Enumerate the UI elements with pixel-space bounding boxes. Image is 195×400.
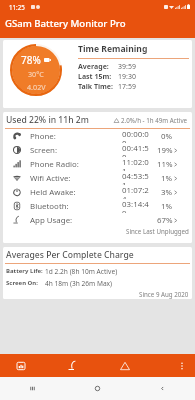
- staticText: 30°C: [28, 69, 44, 79]
- button[interactable]: Home: [65, 377, 130, 400]
- staticText: 3%: [161, 187, 173, 198]
- staticText: 17:59: [118, 82, 136, 92]
- button[interactable]: Back: [130, 377, 195, 400]
- staticText: Since Last Unplugged: [126, 227, 189, 235]
- button[interactable]: Recents: [0, 377, 65, 400]
- staticText: Screen:: [30, 145, 58, 156]
- staticText: Held Awake:: [30, 187, 76, 198]
- staticText: 19%: [157, 145, 173, 156]
- staticText: 0%: [161, 131, 173, 142]
- staticText: Screen On:: [6, 279, 38, 287]
- button[interactable]: Alerts: [107, 354, 143, 377]
- staticText: Battery Life:: [6, 267, 43, 275]
- staticText: 78%: [21, 53, 41, 67]
- button[interactable]: Bluetooth:: [3, 199, 192, 213]
- staticText: Bluetooth:: [30, 201, 69, 212]
- staticText: 39:59: [118, 62, 136, 72]
- button[interactable]: History: [3, 354, 39, 377]
- staticText: Last 15m:: [78, 72, 112, 82]
- button[interactable]: Wifi Active:: [3, 171, 192, 185]
- staticText: 11%: [157, 159, 173, 170]
- staticText: 00:41:50: [122, 143, 149, 157]
- button[interactable]: Screen:: [3, 143, 192, 157]
- button[interactable]: GSam Battery Monitor Pro: [0, 13, 195, 38]
- staticText: 03:14:49: [122, 199, 149, 213]
- staticText: 1d 2.2h (8h 10m Active): [45, 267, 118, 276]
- button[interactable]: Phone Radio:: [3, 157, 192, 171]
- staticText: Averages Per Complete Charge: [6, 249, 134, 261]
- staticText: 04:53:51: [122, 171, 149, 185]
- button[interactable]: Usage chart: [55, 354, 91, 377]
- staticText: 01:07:24: [122, 185, 149, 199]
- staticText: 2.0%/h - 1h 49m Active: [121, 116, 188, 124]
- staticText: 4.02V: [27, 82, 46, 92]
- staticText: 1%: [161, 201, 173, 212]
- staticText: Since 9 Aug 2020: [139, 290, 189, 298]
- staticText: GSam Battery Monitor Pro: [5, 17, 126, 30]
- staticText: 11:02:01: [122, 157, 149, 171]
- staticText: Wifi Active:: [30, 173, 71, 184]
- staticText: App Usage:: [30, 215, 73, 226]
- staticText: Used 22% in 11h 2m: [6, 114, 89, 126]
- button[interactable]: Phone:: [3, 129, 192, 143]
- staticText: 19:30: [118, 72, 136, 82]
- staticText: 00:00:00: [122, 129, 149, 143]
- button[interactable]: Held Awake:: [3, 185, 192, 199]
- button[interactable]: More options: [168, 354, 195, 377]
- staticText: 4h 18m (3h 26m Max): [45, 279, 113, 288]
- staticText: Time Remaining: [78, 43, 148, 55]
- staticText: Phone:: [30, 131, 56, 142]
- staticText: Talk Time:: [78, 82, 114, 92]
- staticText: 1%: [161, 173, 173, 184]
- staticText: 11:25: [9, 3, 25, 11]
- staticText: 67%: [157, 215, 173, 226]
- staticText: Average:: [78, 62, 109, 72]
- staticText: Phone Radio:: [30, 159, 79, 170]
- button[interactable]: App Usage:: [3, 213, 192, 227]
